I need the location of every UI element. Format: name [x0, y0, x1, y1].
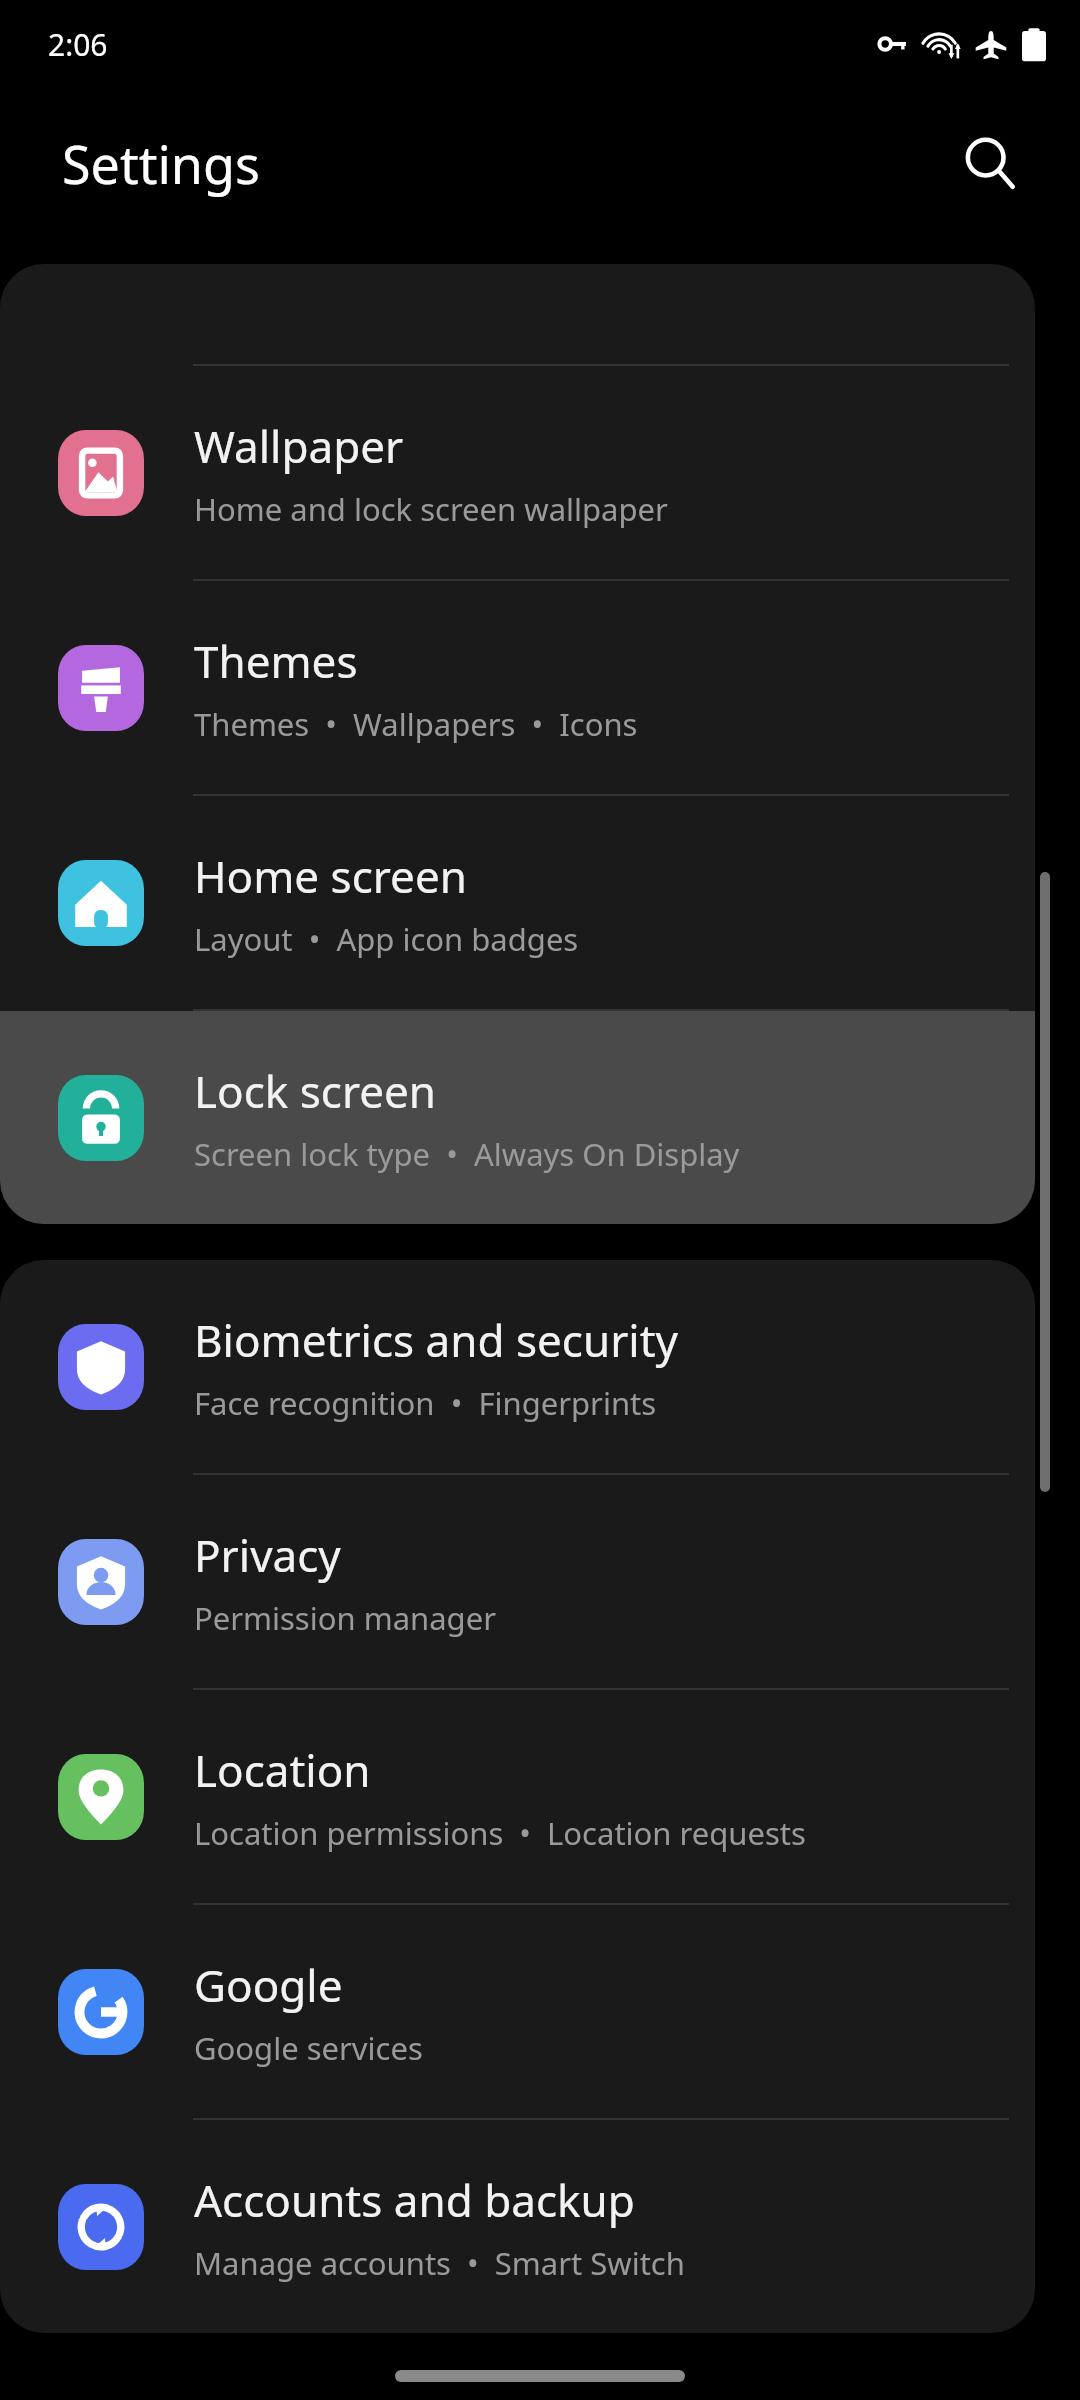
- button[interactable]: Privacy: [0, 1475, 1035, 1690]
- staticText: Lock screen: [194, 1061, 437, 1121]
- button[interactable]: Google: [0, 1905, 1035, 2120]
- staticText: Themes • Wallpapers • Icons: [194, 703, 638, 745]
- button[interactable]: Themes: [0, 581, 1035, 796]
- button[interactable]: Home screen: [0, 796, 1035, 1011]
- button[interactable]: Biometrics and security: [0, 1260, 1035, 1475]
- staticText: Screen lock type • Always On Display: [194, 1133, 740, 1175]
- button[interactable]: Location: [0, 1690, 1035, 1905]
- staticText: Home and lock screen wallpaper: [194, 488, 668, 530]
- button[interactable]: Accounts and backup: [0, 2120, 1035, 2333]
- staticText: 2:06: [48, 24, 108, 65]
- staticText: Wallpaper: [194, 416, 404, 476]
- staticText: Biometrics and security: [194, 1310, 678, 1370]
- staticText: Home screen: [194, 846, 467, 906]
- staticText: Manage accounts • Smart Switch: [194, 2242, 685, 2284]
- staticText: Privacy: [194, 1525, 341, 1585]
- staticText: Permission manager: [194, 1597, 496, 1639]
- staticText: Settings: [62, 128, 260, 199]
- staticText: Layout • App icon badges: [194, 918, 579, 960]
- button[interactable]: Wallpaper: [0, 366, 1035, 581]
- staticText: Accounts and backup: [194, 2170, 635, 2230]
- staticText: Face recognition • Fingerprints: [194, 1382, 657, 1424]
- button[interactable]: Lock screen: [0, 1011, 1035, 1224]
- staticText: Google services: [194, 2027, 423, 2069]
- staticText: Themes: [194, 631, 358, 691]
- staticText: Google: [194, 1955, 343, 2015]
- button[interactable]: Search: [942, 115, 1038, 211]
- staticText: Location permissions • Location requests: [194, 1812, 806, 1854]
- staticText: Location: [194, 1740, 371, 1800]
